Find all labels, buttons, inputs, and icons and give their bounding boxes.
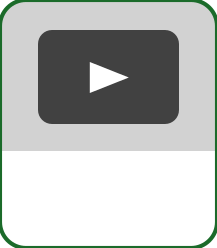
button[interactable]: Play video [38, 30, 179, 124]
